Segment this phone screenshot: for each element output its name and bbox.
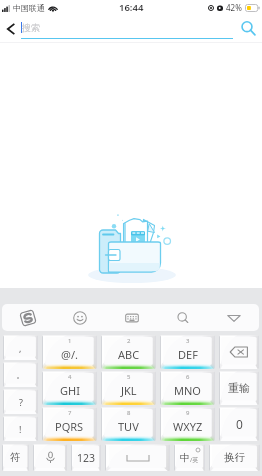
button[interactable]: 3 — [160, 335, 215, 369]
staticText: 3 — [186, 337, 190, 345]
button[interactable]: Backspace — [219, 335, 259, 369]
other: Backspace — [229, 346, 249, 358]
button[interactable]: 。 — [3, 362, 38, 387]
staticText: 中国联通 — [13, 3, 45, 13]
button[interactable]: Emoji — [54, 304, 106, 331]
button[interactable]: 0 — [219, 407, 259, 441]
staticText: 9 — [186, 409, 190, 417]
button[interactable] — [105, 444, 170, 471]
staticText: 重输 — [228, 381, 250, 395]
staticText: ? — [19, 396, 23, 408]
staticText: , — [19, 342, 22, 354]
staticText: 换行 — [224, 451, 245, 464]
button[interactable]: ! — [3, 416, 38, 441]
button[interactable]: , — [3, 335, 38, 360]
button[interactable]: 6 — [160, 371, 215, 405]
button[interactable]: Voice input — [33, 444, 67, 471]
button[interactable]: 9 — [160, 407, 215, 441]
button[interactable]: Search — [235, 15, 262, 42]
button[interactable]: 5 — [101, 371, 156, 405]
staticText: 2 — [127, 337, 131, 345]
button[interactable]: Keyboard layout — [106, 304, 157, 331]
button[interactable]: Back — [0, 15, 21, 42]
button[interactable]: 123 — [71, 444, 101, 471]
staticText: JKL — [121, 383, 137, 398]
staticText: 中 — [180, 451, 190, 464]
staticText: @/. — [61, 347, 78, 362]
staticText: 1 — [68, 337, 72, 345]
button[interactable]: 7 — [42, 407, 97, 441]
staticText: 0 — [236, 416, 243, 432]
button[interactable]: 2 — [101, 335, 156, 369]
staticText: 16:44 — [119, 1, 144, 14]
staticText: ! — [19, 423, 22, 435]
button[interactable]: 换行 — [209, 444, 260, 471]
staticText: 。 — [16, 369, 25, 380]
staticText: 搜索 — [22, 22, 40, 33]
button[interactable]: ? — [3, 389, 38, 414]
button[interactable]: Search — [157, 304, 208, 331]
staticText: 42% — [226, 2, 242, 13]
staticText: 123 — [77, 451, 96, 465]
staticText: ABC — [118, 347, 140, 362]
staticText: 6 — [186, 373, 190, 381]
staticText: DEF — [178, 347, 198, 362]
staticText: 符 — [10, 451, 21, 464]
button[interactable]: 4 — [42, 371, 97, 405]
staticText: PQRS — [55, 419, 84, 434]
staticText: GHI — [60, 383, 80, 398]
button[interactable]: 8 — [101, 407, 156, 441]
button[interactable]: 1 — [42, 335, 97, 369]
other: Voice input — [44, 451, 57, 464]
button[interactable]: 中 — [174, 444, 205, 471]
button[interactable]: Collapse keyboard — [208, 304, 259, 331]
staticText: 4 — [68, 373, 72, 381]
button[interactable]: Sogou input — [2, 304, 54, 331]
staticText: WXYZ — [173, 419, 203, 434]
staticText: 8 — [127, 409, 131, 417]
button[interactable]: 重输 — [219, 371, 259, 405]
staticText: 5 — [127, 373, 131, 381]
staticText: TUV — [118, 419, 139, 434]
staticText: MNO — [174, 383, 201, 398]
staticText: 7 — [68, 409, 72, 417]
button[interactable]: 符 — [2, 444, 29, 471]
staticText: /英 — [190, 456, 199, 464]
